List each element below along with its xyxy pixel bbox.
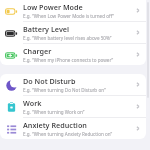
button[interactable]: Charger <box>0 44 146 65</box>
staticText: Do Not Disturb <box>23 76 76 86</box>
staticText: E.g. “When battery level rises above 50%… <box>23 35 112 41</box>
button[interactable]: Anxiety Reduction <box>0 118 146 139</box>
staticText: E.g. “When my iPhone connects to power” <box>23 57 114 63</box>
staticText: Charger <box>23 46 52 56</box>
staticText: Low Power Mode <box>23 2 83 12</box>
staticText: E.g. “When Low Power Mode is turned off” <box>23 13 115 19</box>
staticText: Work <box>23 98 42 108</box>
staticText: E.g. “When turning Anxiety Reduction on” <box>23 131 113 137</box>
staticText: Battery Level <box>23 24 70 34</box>
staticText: E.g. “When turning Work on” <box>23 109 85 115</box>
button[interactable]: Work <box>0 96 146 118</box>
button[interactable]: Battery Level <box>0 22 146 44</box>
button[interactable]: Low Power Mode <box>0 0 146 22</box>
staticText: Anxiety Reduction <box>23 120 87 130</box>
button[interactable]: Do Not Disturb <box>0 74 146 96</box>
staticText: E.g. “When turning Do Not Disturb on” <box>23 87 106 93</box>
